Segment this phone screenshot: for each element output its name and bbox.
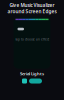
staticText: Serial Lights xyxy=(20,71,44,76)
staticText: Tap to choose an effect xyxy=(15,37,49,41)
staticText: around Screen Edges xyxy=(7,8,56,15)
staticText: Give Music Visualizer xyxy=(9,2,54,8)
